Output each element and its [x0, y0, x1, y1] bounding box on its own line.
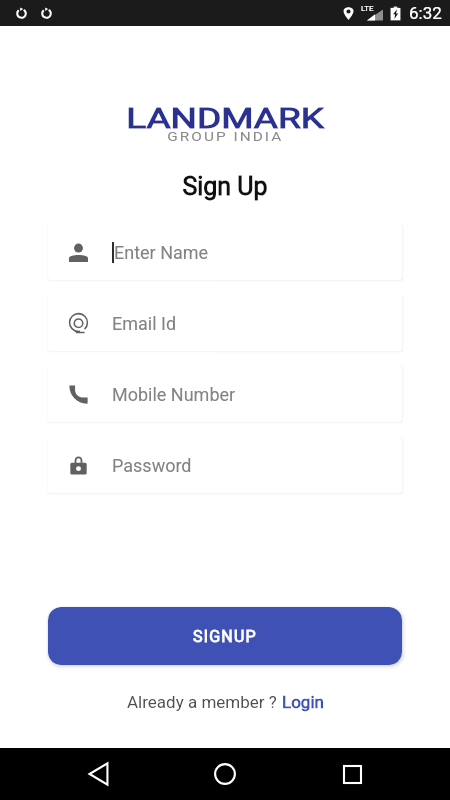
button[interactable]: Home: [203, 752, 247, 796]
staticText: Email Id: [112, 313, 177, 334]
button[interactable]: Login: [282, 692, 324, 712]
staticText: GROUP INDIA: [167, 130, 284, 144]
button[interactable]: Enter Name: [48, 224, 402, 280]
staticText: Sign Up: [0, 172, 450, 201]
staticText: LANDMARK: [126, 103, 325, 135]
button[interactable]: Mobile Number: [48, 366, 402, 422]
button[interactable]: Back: [76, 752, 120, 796]
staticText: Enter Name: [114, 242, 209, 263]
staticText: LTE: [361, 4, 374, 13]
button[interactable]: Email Id: [48, 295, 402, 351]
staticText: Password: [112, 455, 192, 476]
button[interactable]: SIGNUP: [48, 607, 402, 665]
staticText: Already a member ?: [127, 692, 282, 712]
staticText: Mobile Number: [112, 384, 236, 405]
staticText: SIGNUP: [193, 627, 257, 646]
staticText: 6:32: [409, 3, 442, 23]
button[interactable]: Password: [48, 437, 402, 493]
staticText: Login: [282, 692, 324, 712]
button[interactable]: Recents: [330, 752, 374, 796]
